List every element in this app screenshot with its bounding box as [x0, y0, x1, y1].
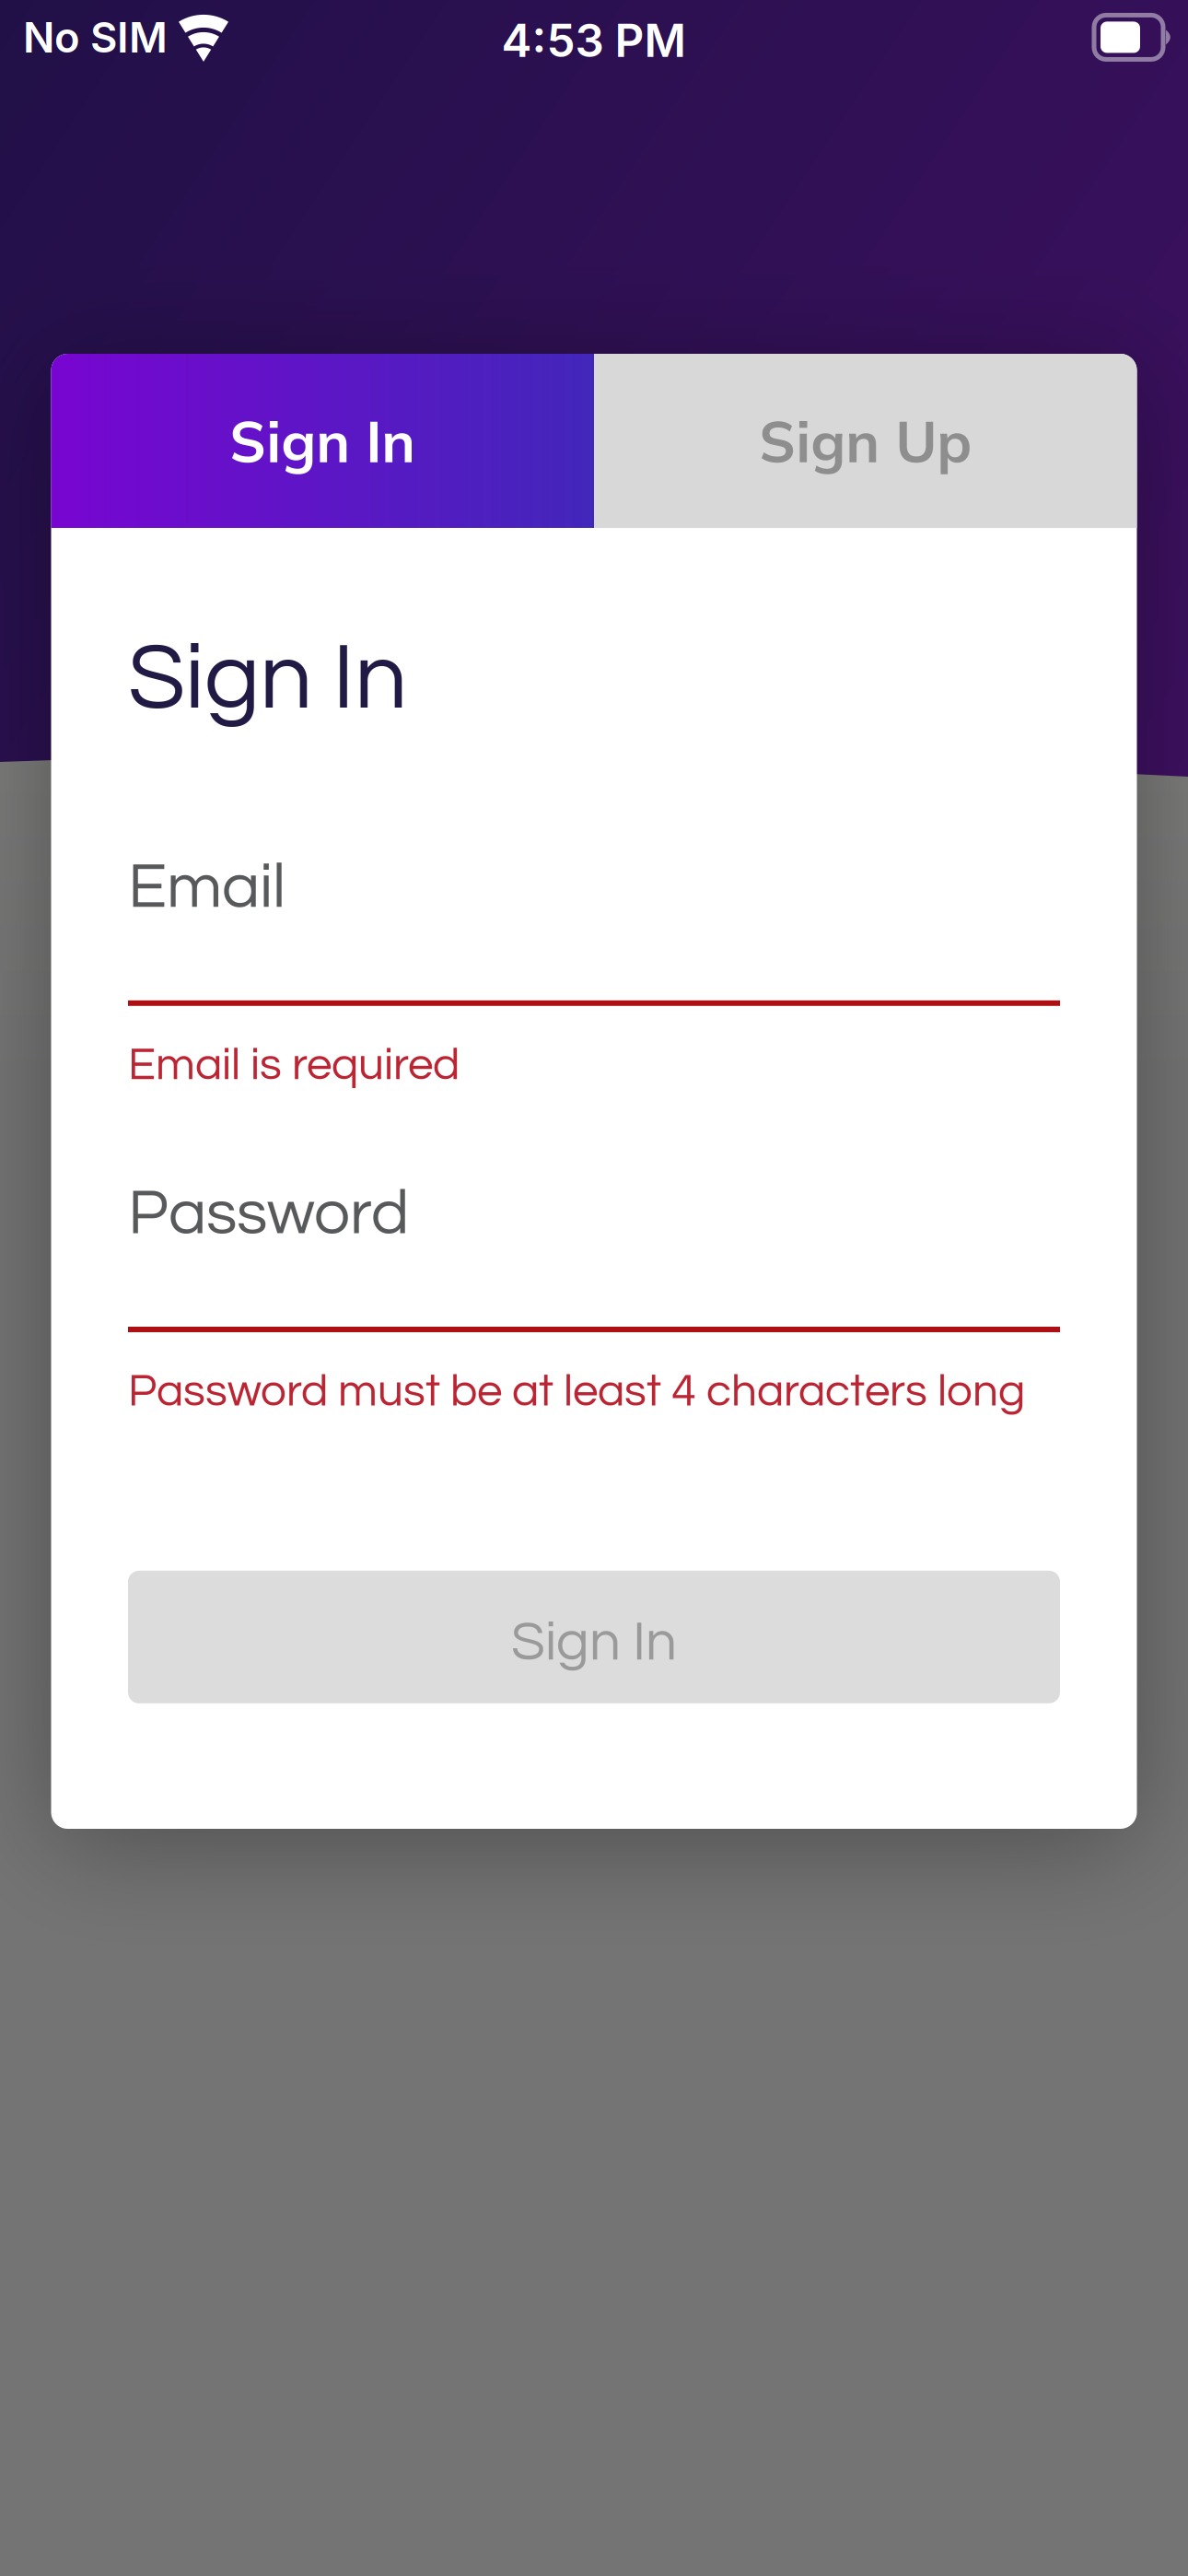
staticText: 4:53 PM: [501, 13, 687, 68]
staticText: Email is required: [128, 1042, 460, 1089]
button[interactable]: Sign In: [128, 1571, 1060, 1703]
staticText: Sign Up: [759, 405, 972, 476]
staticText: Password must be at least 4 characters l…: [128, 1368, 1025, 1415]
staticText: Sign In: [128, 631, 407, 727]
staticText: Sign In: [511, 1614, 677, 1671]
staticText: No SIM: [23, 12, 168, 63]
button[interactable]: Sign In: [51, 354, 594, 528]
staticText: Email: [128, 854, 285, 920]
staticText: Password: [128, 1181, 409, 1247]
button[interactable]: Sign Up: [594, 354, 1137, 528]
staticText: Sign In: [229, 405, 416, 476]
